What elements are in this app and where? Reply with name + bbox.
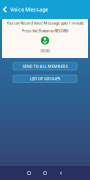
button[interactable]: Recent apps xyxy=(21,166,37,180)
staticText: SEND TO ALL MEMBERS xyxy=(22,64,67,69)
button[interactable]: Home xyxy=(37,166,53,180)
staticText: LIST OF GROUPS xyxy=(30,76,60,81)
staticText: 00:00 xyxy=(40,48,49,53)
button[interactable]: SEND TO ALL MEMBERS xyxy=(13,62,77,70)
button[interactable]: Back xyxy=(53,166,69,180)
button[interactable]: Record voice message xyxy=(40,36,50,45)
staticText: You can Record Voice Message upto 1 minu… xyxy=(6,20,83,26)
button[interactable]: Back xyxy=(0,0,10,19)
button[interactable]: LIST OF GROUPS xyxy=(13,75,77,82)
staticText: Voice Message xyxy=(10,6,48,13)
staticText: Press the Button to RECORD xyxy=(21,28,68,33)
